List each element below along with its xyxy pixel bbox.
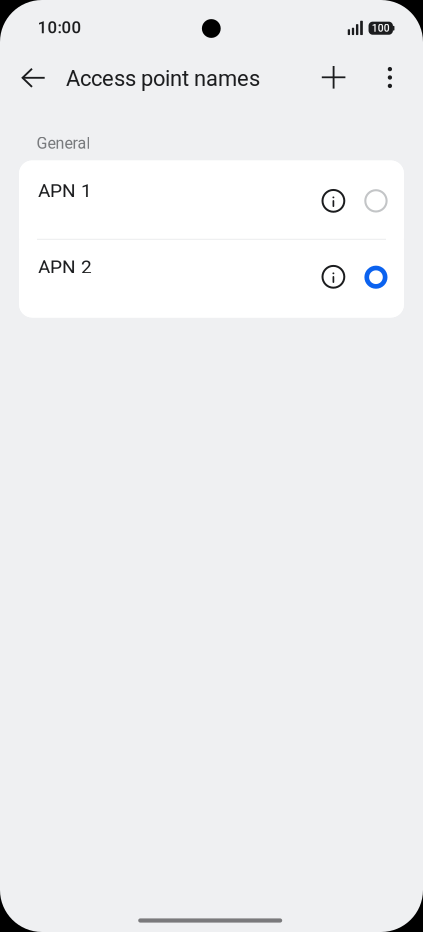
button[interactable]: APN 2 settings	[309, 238, 357, 315]
button[interactable]: Navigate up	[10, 54, 58, 102]
staticText: 10:00	[38, 18, 82, 37]
button[interactable]: Select APN 2	[354, 238, 398, 316]
button[interactable]: More options	[368, 53, 412, 101]
staticText: General	[36, 134, 90, 153]
staticText: APN 2	[38, 256, 92, 278]
staticText: 100	[372, 22, 390, 34]
staticText: Access point names	[66, 66, 260, 91]
button[interactable]: Select APN 1	[354, 162, 398, 240]
staticText: APN 1	[38, 180, 92, 202]
button[interactable]: APN 1 settings	[309, 162, 357, 240]
button[interactable]: APN 2	[19, 240, 404, 317]
button[interactable]: Add APN	[310, 53, 358, 101]
button[interactable]: APN 1	[19, 160, 404, 239]
